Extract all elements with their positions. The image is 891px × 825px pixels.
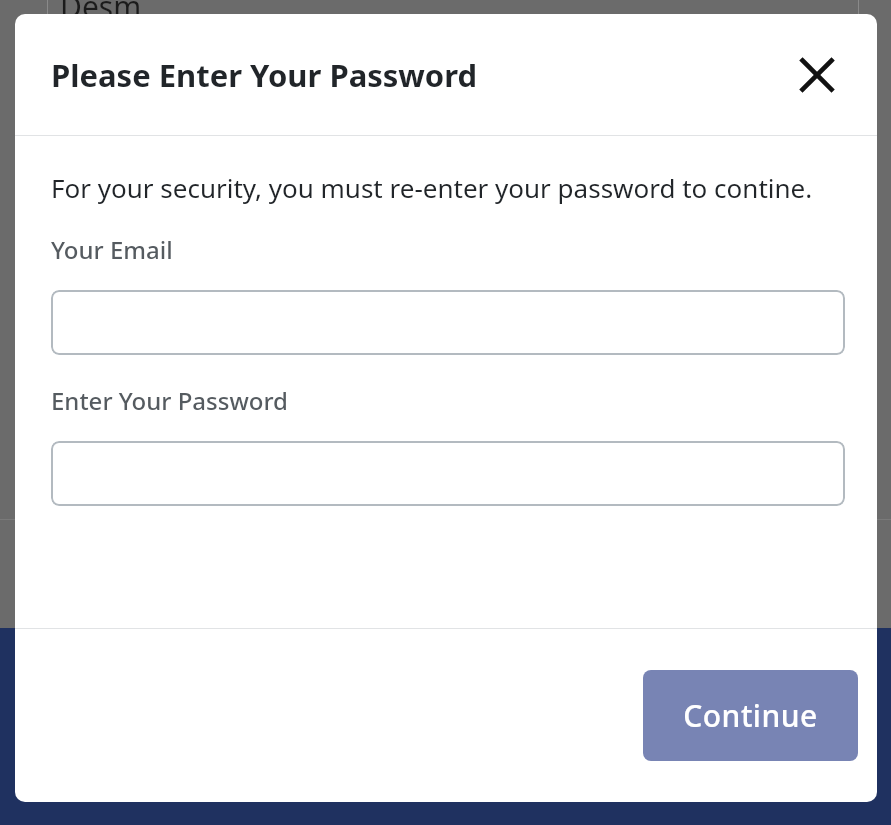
button[interactable]: Close [793,51,841,99]
staticText: Desm [60,0,142,27]
button[interactable] [51,290,845,355]
staticText: Enter Your Password [51,384,288,417]
staticText: For your security, you must re-enter you… [51,170,813,205]
button[interactable]: Continue [643,670,858,761]
staticText: Your Email [51,233,173,266]
button[interactable] [51,441,845,506]
staticText: Continue [683,695,818,736]
staticText: Please Enter Your Password [51,54,478,96]
